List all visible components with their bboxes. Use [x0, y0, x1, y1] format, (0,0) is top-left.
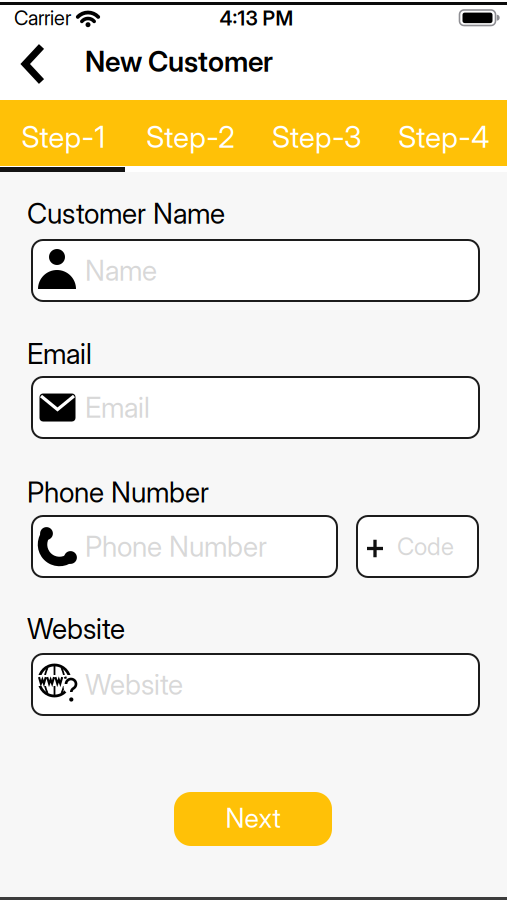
staticText: Phone Number [27, 476, 209, 509]
staticText: Customer Name [27, 197, 225, 230]
staticText: Step-4 [398, 120, 489, 154]
staticText: Email [27, 337, 92, 370]
button[interactable]: Step-1 [0, 100, 127, 166]
button[interactable]: Step-2 [127, 100, 254, 166]
staticText: Email [85, 391, 150, 424]
staticText: 4:13 PM [219, 6, 293, 30]
staticText: Step-3 [272, 120, 362, 154]
staticText: New Customer [85, 45, 273, 78]
staticText: Website [27, 612, 125, 645]
staticText: Phone Number [85, 530, 267, 563]
button[interactable]: Email [32, 377, 479, 438]
button[interactable]: Step-4 [380, 100, 507, 166]
button[interactable]: Name [32, 240, 479, 301]
staticText: Next [225, 802, 280, 834]
staticText: Step-1 [21, 120, 105, 154]
staticText: Carrier [14, 6, 71, 30]
staticText: Website [85, 668, 183, 701]
staticText: Code [397, 532, 454, 561]
button[interactable]: Step-3 [253, 100, 380, 166]
button[interactable]: Next [174, 792, 332, 846]
button[interactable]: Phone Number [32, 516, 337, 577]
button[interactable]: Code [357, 516, 478, 577]
staticText: Name [85, 254, 157, 287]
button[interactable]: Website [32, 654, 479, 715]
button[interactable] [22, 44, 45, 83]
staticText: Step-2 [146, 120, 234, 154]
